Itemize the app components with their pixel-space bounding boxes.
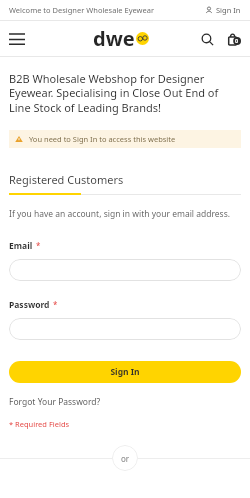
staticText: If you have an account, sign in with you…: [9, 208, 231, 220]
button[interactable]: Sign In: [205, 5, 241, 15]
staticText: Registered Customers: [9, 172, 124, 187]
staticText: or: [121, 453, 130, 464]
button[interactable]: Search: [196, 28, 218, 50]
staticText: Welcome to Designer Wholesale Eyewear: [9, 5, 155, 15]
button[interactable]: Cart, 0 items: [221, 27, 245, 51]
button[interactable]: Forgot Your Password?: [9, 396, 101, 408]
staticText: Sign In: [216, 5, 241, 15]
staticText: * Required Fields: [9, 419, 70, 429]
button[interactable]: Text field: [9, 259, 241, 281]
button[interactable]: Menu: [6, 28, 28, 50]
staticText: Password: [9, 299, 50, 311]
staticText: 0: [235, 37, 239, 44]
button[interactable]: Text field: [9, 318, 241, 340]
staticText: dwe: [93, 25, 135, 52]
button[interactable]: dwe home: [93, 25, 149, 52]
staticText: *: [36, 240, 41, 251]
staticText: *: [53, 299, 58, 310]
staticText: B2B Wholesale Webshop for Designer Eyewe…: [9, 71, 241, 116]
staticText: You need to Sign In to access this websi…: [29, 134, 176, 144]
staticText: Email: [9, 240, 33, 252]
staticText: Sign In: [110, 366, 140, 378]
button[interactable]: Sign In: [9, 361, 241, 383]
